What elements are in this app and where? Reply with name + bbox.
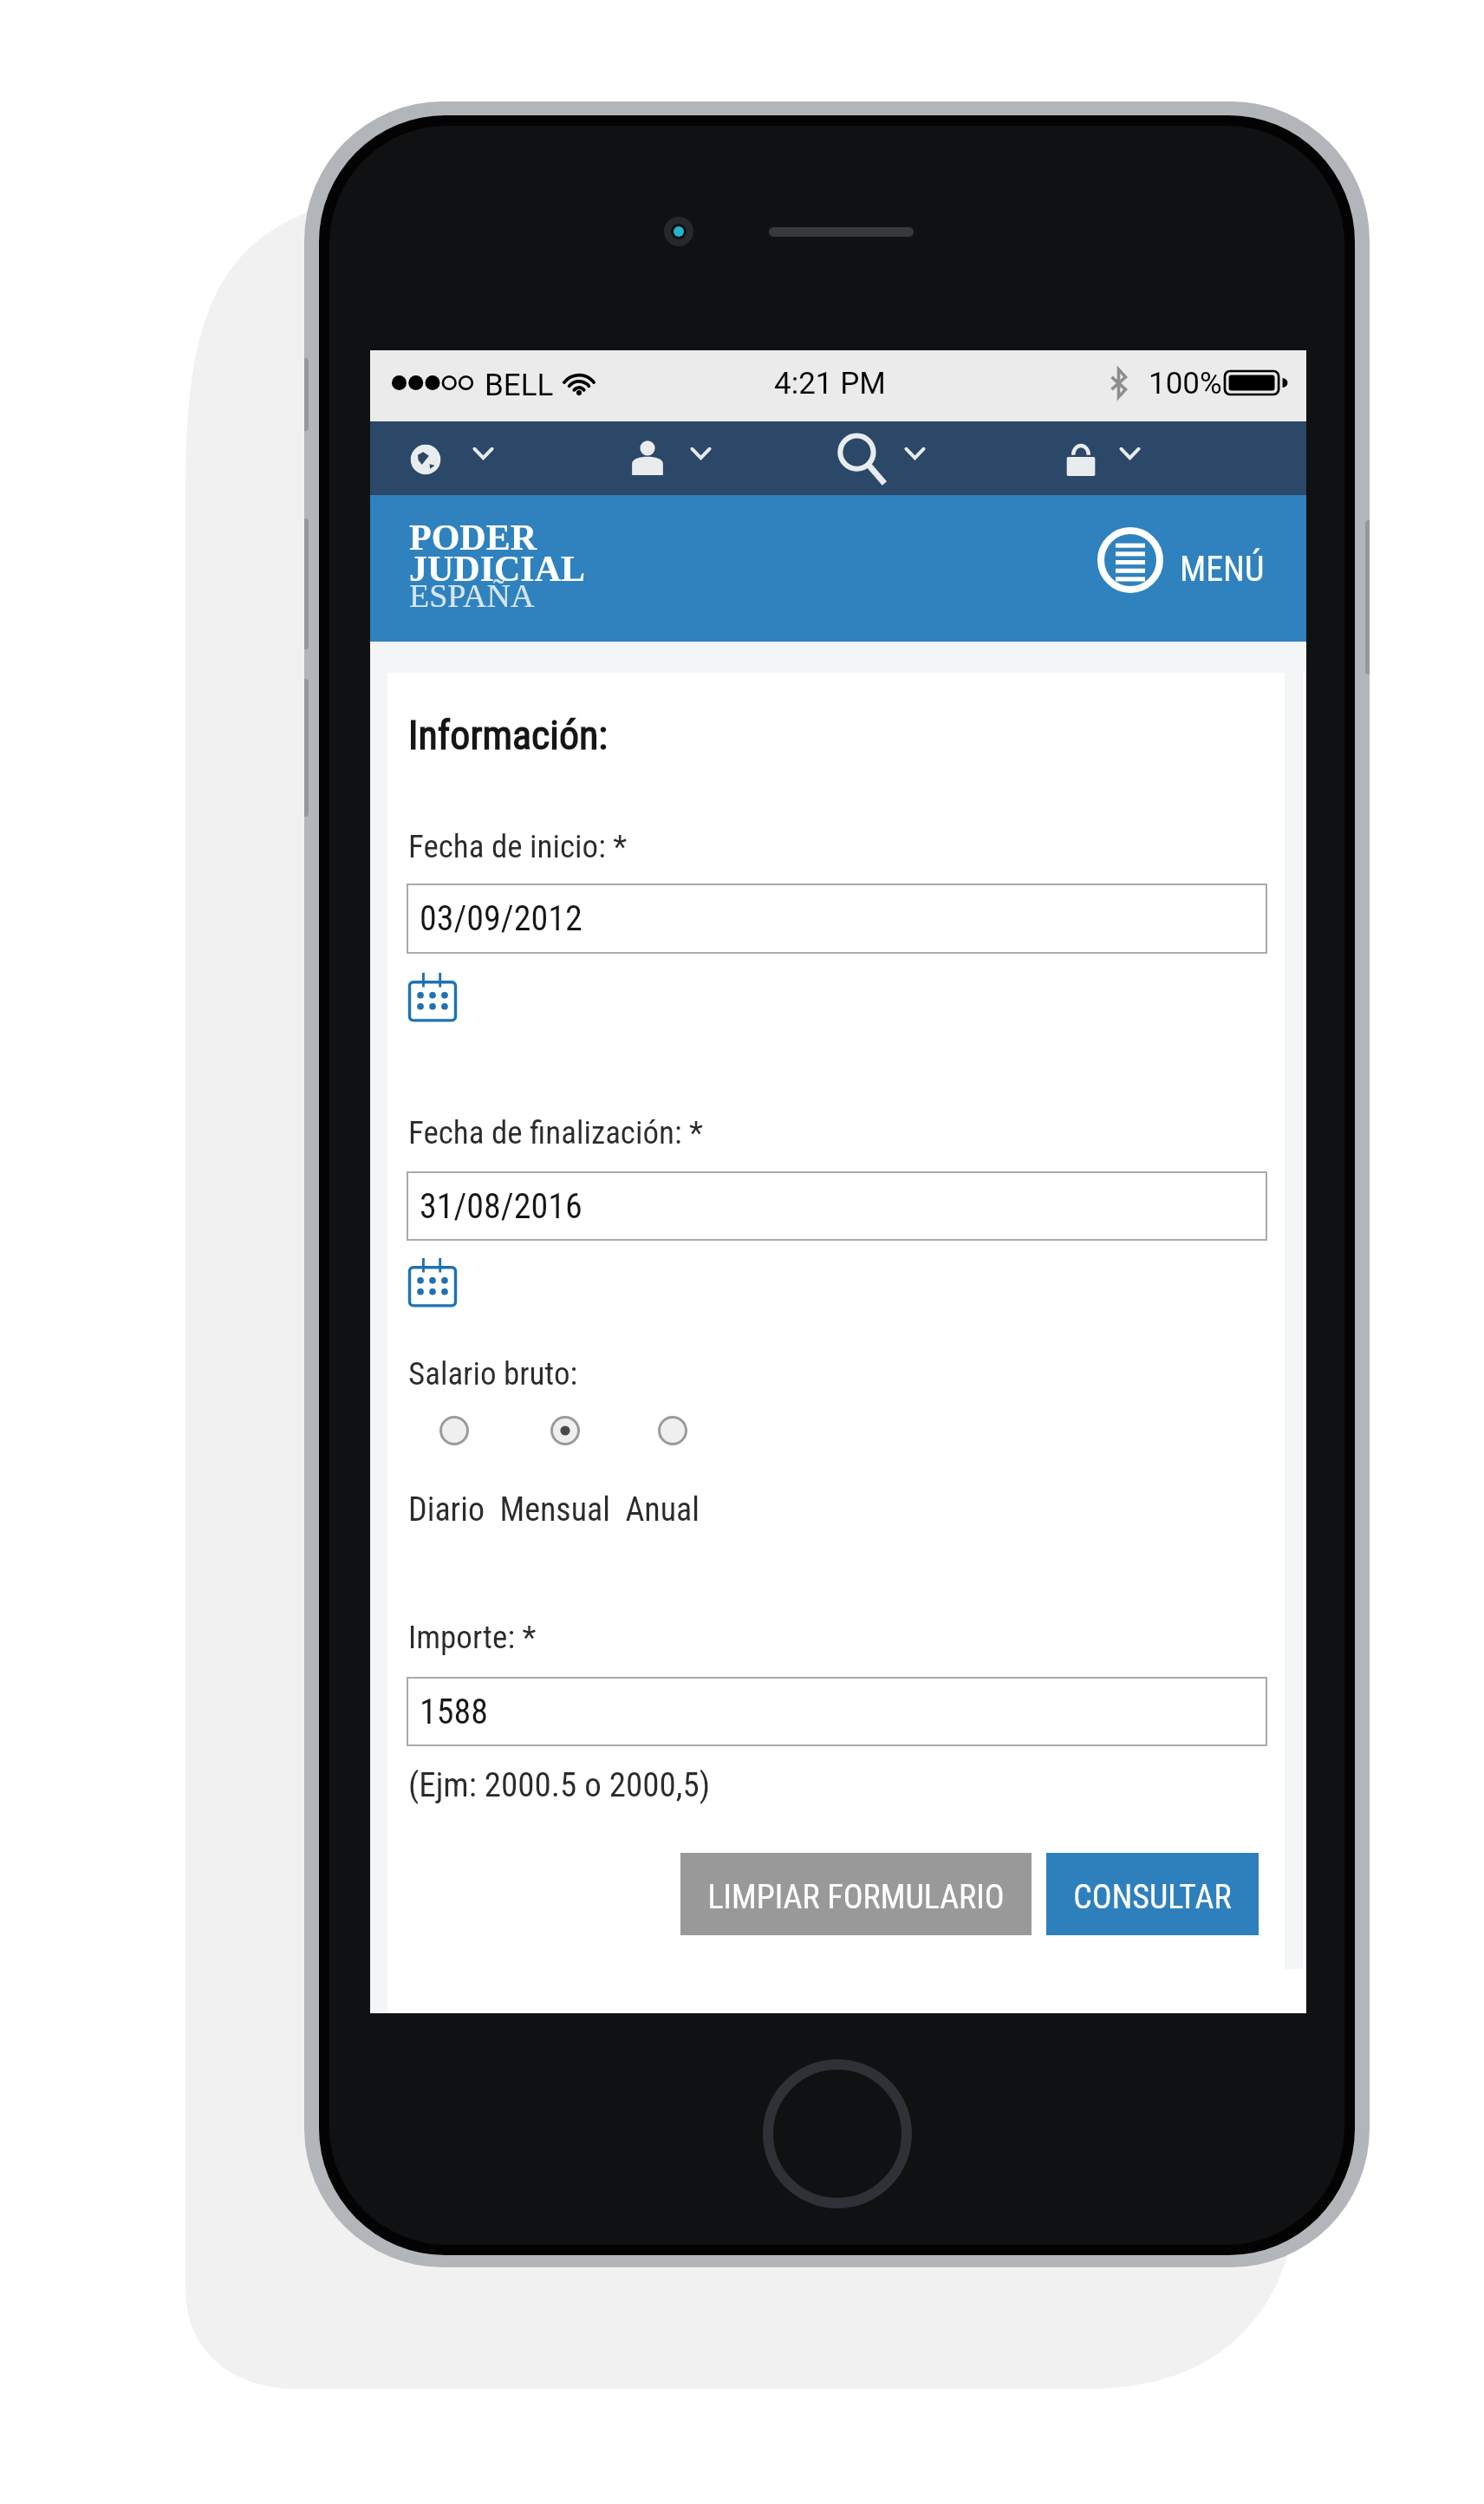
staticText: 1588 bbox=[420, 1692, 488, 1732]
staticText: CONSULTAR bbox=[1073, 1878, 1232, 1917]
staticText: 100% bbox=[1149, 366, 1222, 401]
button[interactable]: Expand menu bbox=[1106, 429, 1153, 476]
button[interactable]: Account bbox=[619, 428, 676, 486]
button[interactable]: Open date picker bbox=[406, 1258, 459, 1308]
staticText: Diario Mensual Anual bbox=[408, 1490, 700, 1529]
staticText: ESPAÑA bbox=[409, 577, 535, 614]
staticText: LIMPIAR FORMULARIO bbox=[707, 1878, 1005, 1917]
button[interactable]: Expand menu bbox=[459, 429, 506, 476]
button[interactable]: Open date picker bbox=[406, 973, 459, 1023]
button[interactable]: MENÚ bbox=[1180, 549, 1265, 590]
button[interactable]: Select option bbox=[550, 1416, 580, 1445]
button[interactable]: Open menu bbox=[1097, 527, 1163, 593]
staticText: 4:21 PM bbox=[774, 366, 886, 401]
staticText: JUDICIAL bbox=[409, 549, 586, 590]
button[interactable]: 1588 bbox=[407, 1677, 1267, 1746]
button[interactable]: Select option bbox=[439, 1416, 469, 1445]
button[interactable]: LIMPIAR FORMULARIO bbox=[680, 1853, 1032, 1935]
button[interactable]: Language bbox=[397, 431, 454, 488]
staticText: PODER bbox=[409, 518, 537, 558]
staticText: Importe: * bbox=[408, 1619, 537, 1656]
button[interactable]: Expand menu bbox=[677, 429, 724, 476]
button[interactable]: CONSULTAR bbox=[1046, 1853, 1259, 1935]
staticText: Salario bruto: bbox=[408, 1355, 578, 1392]
button[interactable]: Secure access bbox=[1052, 431, 1110, 488]
staticText: Información: bbox=[408, 712, 609, 759]
staticText: (Ejm: 2000.5 o 2000,5) bbox=[408, 1765, 711, 1805]
button[interactable]: 31/08/2016 bbox=[407, 1171, 1267, 1241]
staticText: 31/08/2016 bbox=[420, 1186, 583, 1227]
staticText: 03/09/2012 bbox=[420, 898, 583, 939]
button[interactable]: Expand menu bbox=[891, 429, 938, 476]
button[interactable]: Select option bbox=[658, 1416, 687, 1445]
staticText: Fecha de inicio: * bbox=[408, 828, 628, 865]
button[interactable]: 03/09/2012 bbox=[407, 884, 1267, 954]
button[interactable]: Search bbox=[835, 431, 892, 488]
staticText: BELL bbox=[485, 368, 554, 403]
staticText: Fecha de finalización: * bbox=[408, 1114, 703, 1151]
